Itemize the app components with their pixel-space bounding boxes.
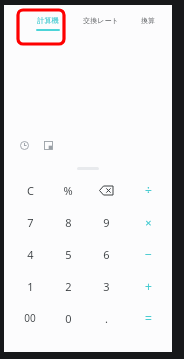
staticText: ÷	[145, 182, 152, 198]
button[interactable]: ×	[129, 206, 167, 238]
button[interactable]: 0	[49, 302, 87, 334]
staticText: 6	[103, 247, 110, 262]
button[interactable]: 2	[49, 270, 87, 302]
staticText: 0	[65, 311, 72, 326]
staticText: 2	[65, 279, 72, 294]
button[interactable]: 6	[87, 238, 125, 270]
button[interactable]: ÷	[129, 174, 167, 206]
staticText: C	[27, 183, 34, 198]
button[interactable]: −	[129, 238, 167, 270]
button[interactable]: 1	[11, 270, 49, 302]
button[interactable]: 交換レート	[74, 5, 128, 41]
button[interactable]: 4	[11, 238, 49, 270]
staticText: 交換レート	[83, 16, 119, 25]
staticText: 計算機	[37, 16, 59, 25]
staticText: 4	[27, 247, 34, 262]
button[interactable]: 7	[11, 206, 49, 238]
staticText: .	[105, 311, 108, 326]
staticText: 00	[24, 311, 36, 325]
staticText: ×	[145, 215, 152, 230]
button[interactable]: 計算機	[26, 5, 70, 41]
button[interactable]: .	[87, 302, 125, 334]
staticText: 7	[27, 215, 34, 230]
button[interactable]: History	[16, 137, 32, 153]
staticText: −	[145, 246, 152, 262]
button[interactable]: %	[49, 174, 87, 206]
button[interactable]: Backspace	[87, 174, 125, 206]
button[interactable]: Notes	[40, 137, 56, 153]
button[interactable]: 8	[49, 206, 87, 238]
button[interactable]: 9	[87, 206, 125, 238]
staticText: +	[145, 278, 152, 294]
staticText: 8	[65, 215, 72, 230]
button[interactable]: +	[129, 270, 167, 302]
staticText: 1	[27, 279, 34, 294]
staticText: =	[145, 310, 152, 326]
button[interactable]: C	[11, 174, 49, 206]
button[interactable]: 3	[87, 270, 125, 302]
staticText: 3	[103, 279, 110, 294]
button[interactable]: =	[129, 302, 167, 334]
staticText: 5	[65, 247, 72, 262]
staticText: 9	[103, 215, 110, 230]
button[interactable]: 換算	[130, 5, 166, 41]
button[interactable]: 00	[11, 302, 49, 334]
button[interactable]: 5	[49, 238, 87, 270]
staticText: 換算	[141, 16, 155, 25]
staticText: %	[63, 183, 73, 198]
